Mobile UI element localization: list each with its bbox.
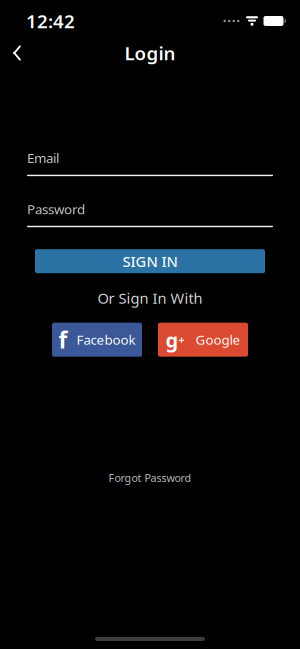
staticText: Or Sign In With — [97, 288, 202, 308]
button[interactable]: SIGN IN — [35, 249, 265, 273]
button[interactable]: f — [52, 323, 142, 357]
button[interactable]: Back — [0, 36, 34, 70]
staticText: g — [165, 326, 178, 353]
staticText: Google — [195, 331, 240, 348]
staticText: + — [178, 333, 184, 347]
staticText: SIGN IN — [122, 251, 177, 271]
staticText: Forgot Password — [108, 471, 191, 485]
button[interactable]: g — [158, 323, 248, 357]
staticText: 12:42 — [26, 9, 75, 33]
staticText: Email — [27, 149, 59, 167]
button[interactable]: Forgot Password — [94, 465, 205, 491]
staticText: Facebook — [76, 331, 135, 348]
staticText: f — [58, 325, 67, 355]
staticText: Password — [27, 200, 85, 218]
staticText: Login — [124, 41, 175, 65]
